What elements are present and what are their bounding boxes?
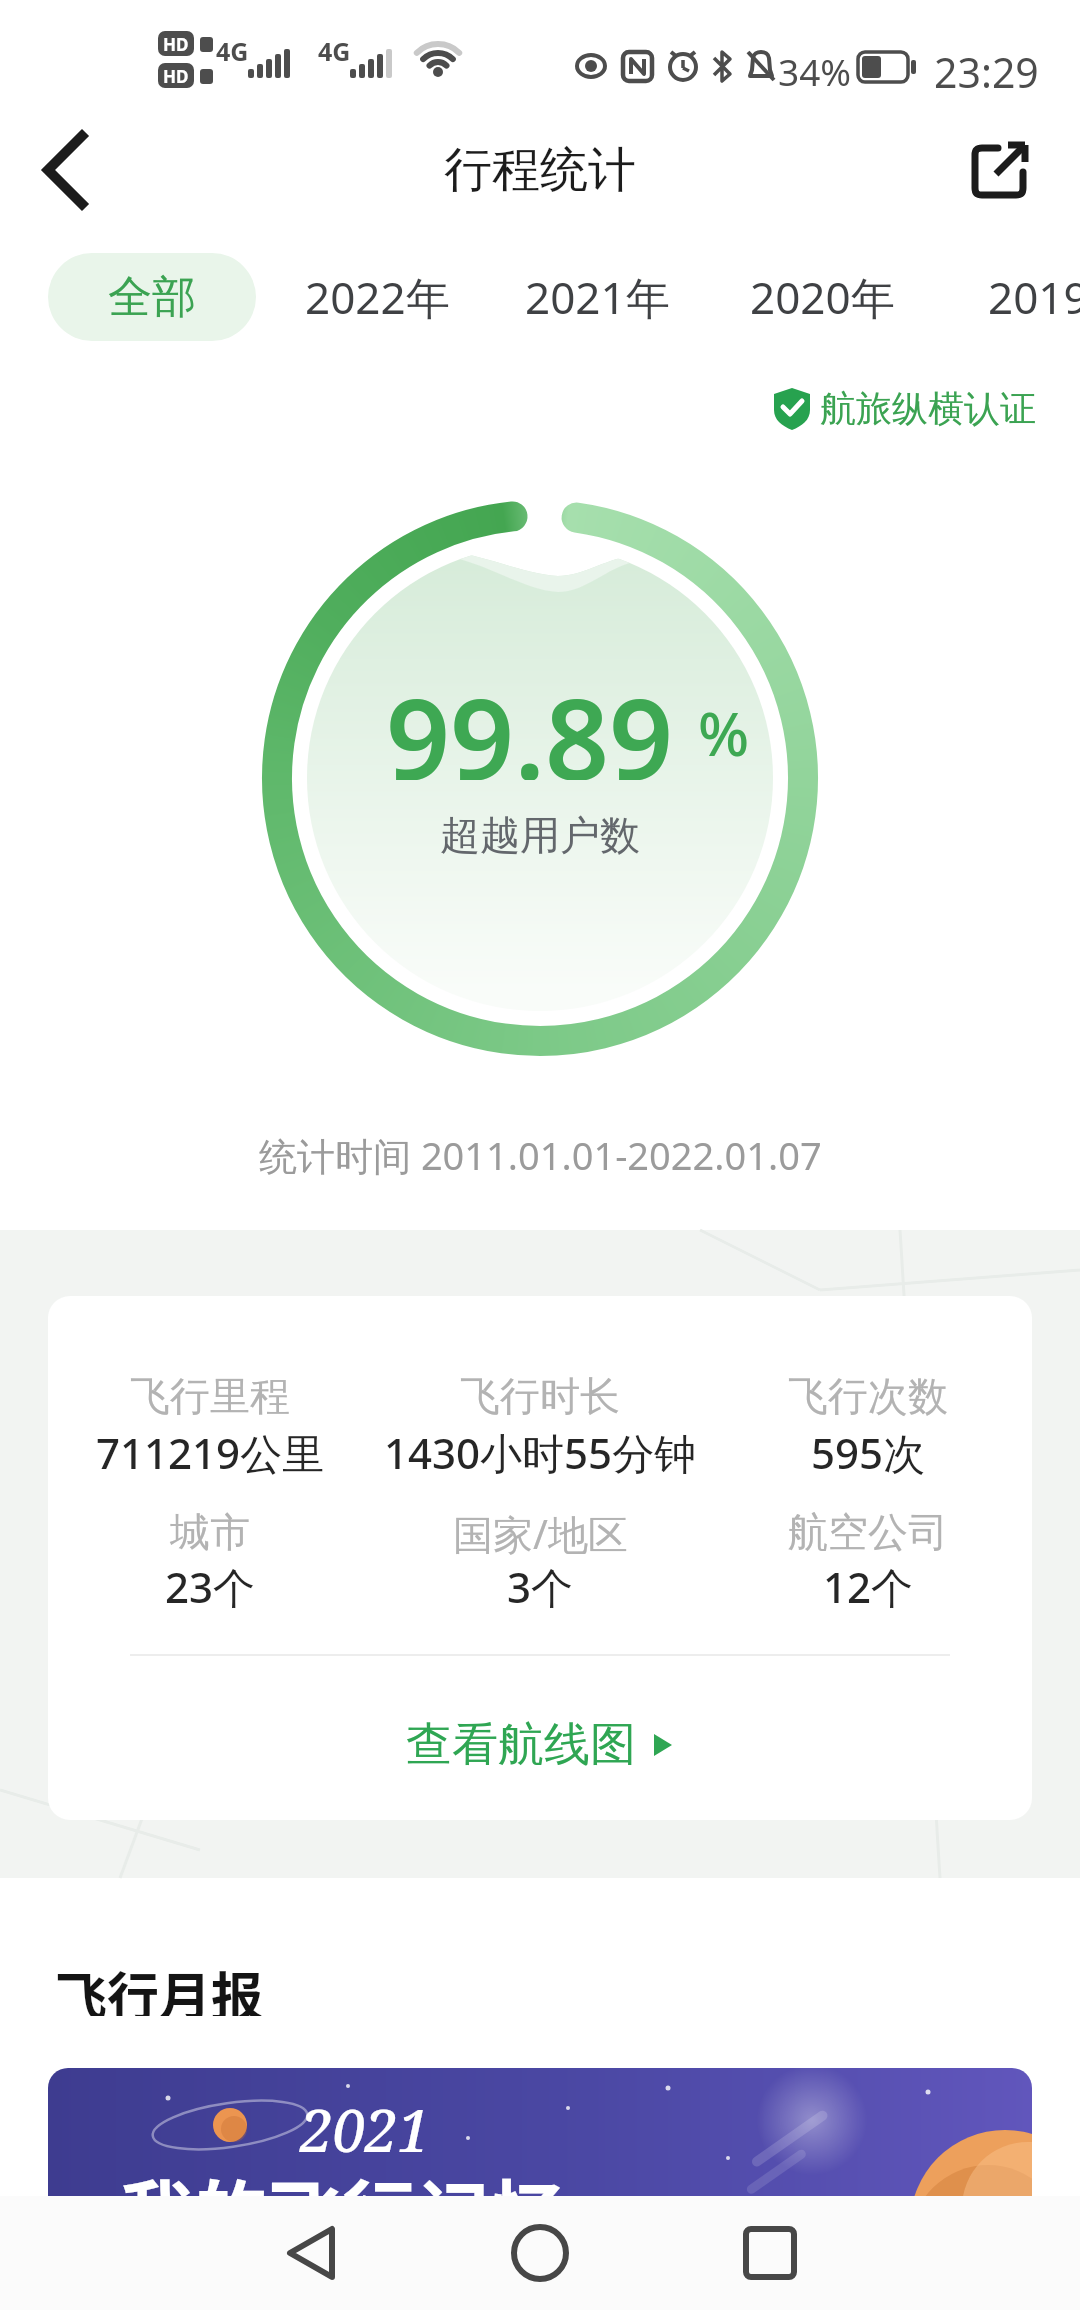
staticText: 航空公司	[788, 1507, 948, 1557]
staticText: 查看航线图	[406, 1716, 636, 1774]
staticText: 34%	[778, 46, 852, 86]
staticText: 4G	[216, 34, 249, 64]
staticText: HD	[163, 65, 189, 88]
staticText: 23个	[165, 1558, 256, 1614]
staticText: 2020年	[750, 267, 895, 327]
staticText: 2022年	[305, 267, 450, 327]
staticText: 2019年	[988, 267, 1080, 327]
staticText: 595次	[811, 1424, 926, 1480]
button[interactable]: 2020年	[742, 253, 902, 341]
staticText: 23:29	[934, 44, 1039, 88]
staticText: 航旅纵横认证	[820, 386, 1036, 430]
staticText: 行程统计	[444, 140, 636, 200]
button[interactable]: 查看航线图	[380, 1700, 700, 1790]
button[interactable]: 2021年	[517, 253, 677, 341]
staticText: 3个	[507, 1558, 574, 1614]
staticText: HD	[163, 33, 189, 56]
staticText: %	[698, 692, 750, 774]
staticText: 1430小时55分钟	[384, 1424, 697, 1480]
button[interactable]: 全部	[48, 253, 256, 341]
staticText: 4G	[318, 34, 351, 64]
button[interactable]: 2022年	[297, 253, 457, 341]
button[interactable]	[20, 128, 108, 212]
button[interactable]	[250, 2196, 410, 2310]
staticText: 城市	[170, 1507, 250, 1557]
button[interactable]	[690, 2196, 850, 2310]
staticText: 2021年	[525, 267, 670, 327]
staticText: 12个	[823, 1558, 914, 1614]
button[interactable]: 航旅纵横认证	[820, 386, 1050, 430]
staticText: 我的飞行记忆	[120, 2156, 564, 2196]
staticText: 99.89	[386, 660, 674, 780]
staticText: 2021	[300, 2090, 430, 2169]
button[interactable]	[460, 2196, 620, 2310]
staticText: 超越用户数	[440, 810, 640, 858]
staticText: 飞行次数	[788, 1371, 948, 1421]
button[interactable]: 2021	[48, 2068, 1032, 2196]
staticText: 飞行时长	[460, 1371, 620, 1421]
staticText: 统计时间 2011.01.01-2022.01.07	[259, 1129, 822, 1181]
staticText: 711219公里	[96, 1424, 325, 1480]
staticText: 飞行月报	[55, 1956, 264, 2016]
staticText: 全部	[108, 270, 196, 325]
button[interactable]: 2019年	[988, 253, 1080, 341]
button[interactable]	[958, 130, 1042, 210]
staticText: 飞行里程	[130, 1371, 290, 1421]
staticText: 国家/地区	[453, 1506, 628, 1558]
